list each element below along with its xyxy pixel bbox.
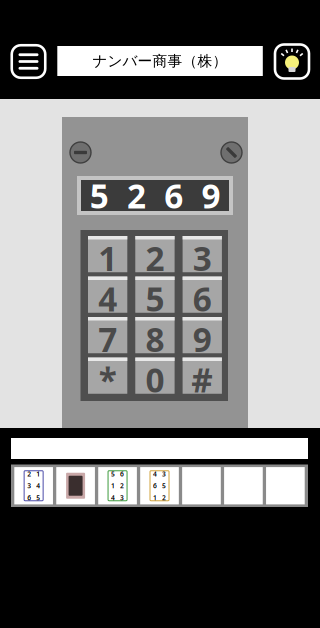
button[interactable]: Blue number card [14, 467, 53, 504]
staticText: ナンバー商事（株） [92, 52, 227, 70]
staticText: 7 [98, 317, 117, 353]
staticText: 4 [98, 276, 117, 313]
staticText: 4 [36, 481, 40, 490]
button[interactable]: Empty slot [266, 467, 305, 504]
staticText: 6 [27, 493, 31, 502]
staticText: * [99, 357, 117, 394]
staticText: 6 [164, 173, 183, 218]
button[interactable]: 7 [88, 317, 127, 353]
staticText: 3 [120, 493, 124, 502]
button[interactable]: 9 [183, 317, 222, 353]
button[interactable]: Empty slot [182, 467, 221, 504]
staticText: 2 [162, 493, 166, 502]
staticText: 6 [153, 481, 157, 490]
staticText: 5 [111, 469, 115, 478]
button[interactable]: # [183, 357, 222, 394]
button[interactable]: 1 [88, 236, 127, 272]
button[interactable]: 3 [183, 236, 222, 272]
staticText: 3 [27, 481, 31, 490]
staticText: 1 [98, 236, 117, 272]
button[interactable]: Menu [11, 45, 45, 78]
button[interactable]: 4 [88, 276, 127, 313]
staticText: 2 [145, 236, 164, 272]
button[interactable]: Orange number card [140, 467, 179, 504]
staticText: 5 [36, 493, 40, 502]
staticText: 2 [27, 469, 31, 478]
button[interactable]: 2 [135, 236, 175, 272]
staticText: # [191, 357, 213, 394]
button[interactable]: * [88, 357, 127, 394]
staticText: 3 [162, 469, 166, 478]
staticText: 4 [111, 493, 115, 502]
staticText: 6 [120, 469, 124, 478]
staticText: 9 [193, 317, 212, 353]
staticText: 2 [127, 173, 146, 218]
button[interactable]: 5 [135, 276, 175, 313]
staticText: 5 [145, 276, 164, 313]
button[interactable]: 8 [135, 317, 175, 353]
staticText: 9 [201, 173, 220, 218]
staticText: 1 [111, 481, 115, 490]
staticText: 6 [193, 276, 212, 313]
staticText: 5 [90, 173, 109, 218]
button[interactable]: Empty slot [224, 467, 263, 504]
staticText: 3 [193, 236, 212, 272]
button[interactable]: Green number card [98, 467, 137, 504]
staticText: 0 [145, 357, 164, 394]
staticText: 1 [153, 493, 157, 502]
staticText: 5 [162, 481, 166, 490]
staticText: 2 [120, 481, 124, 490]
button[interactable]: 0 [135, 357, 175, 394]
staticText: 4 [153, 469, 157, 478]
button[interactable]: 6 [183, 276, 222, 313]
staticText: 1 [36, 469, 40, 478]
button[interactable]: Photograph [56, 467, 95, 504]
staticText: 8 [145, 317, 164, 353]
button[interactable]: Hint [275, 45, 309, 78]
